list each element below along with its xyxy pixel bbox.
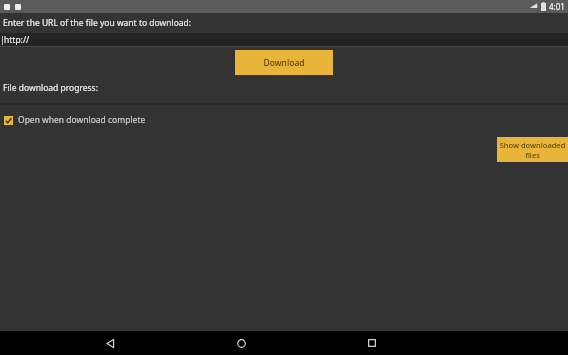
button[interactable]: Recent apps — [350, 331, 394, 355]
button[interactable]: Open when download complete — [4, 114, 146, 126]
staticText: Download — [263, 57, 305, 69]
staticText: Show downloaded files — [497, 140, 568, 160]
staticText: Open when download complete — [18, 114, 146, 126]
button[interactable]: Download — [235, 50, 333, 75]
button[interactable]: Back — [88, 331, 132, 355]
staticText: 4:01 — [549, 1, 565, 12]
button[interactable]: Home — [219, 331, 263, 355]
staticText: http:// — [4, 34, 30, 46]
staticText: Enter the URL of the file you want to do… — [3, 17, 192, 29]
staticText: File download progress: — [3, 82, 98, 94]
button[interactable]: Show downloaded files — [497, 137, 568, 162]
button[interactable]: http:// — [0, 33, 568, 47]
